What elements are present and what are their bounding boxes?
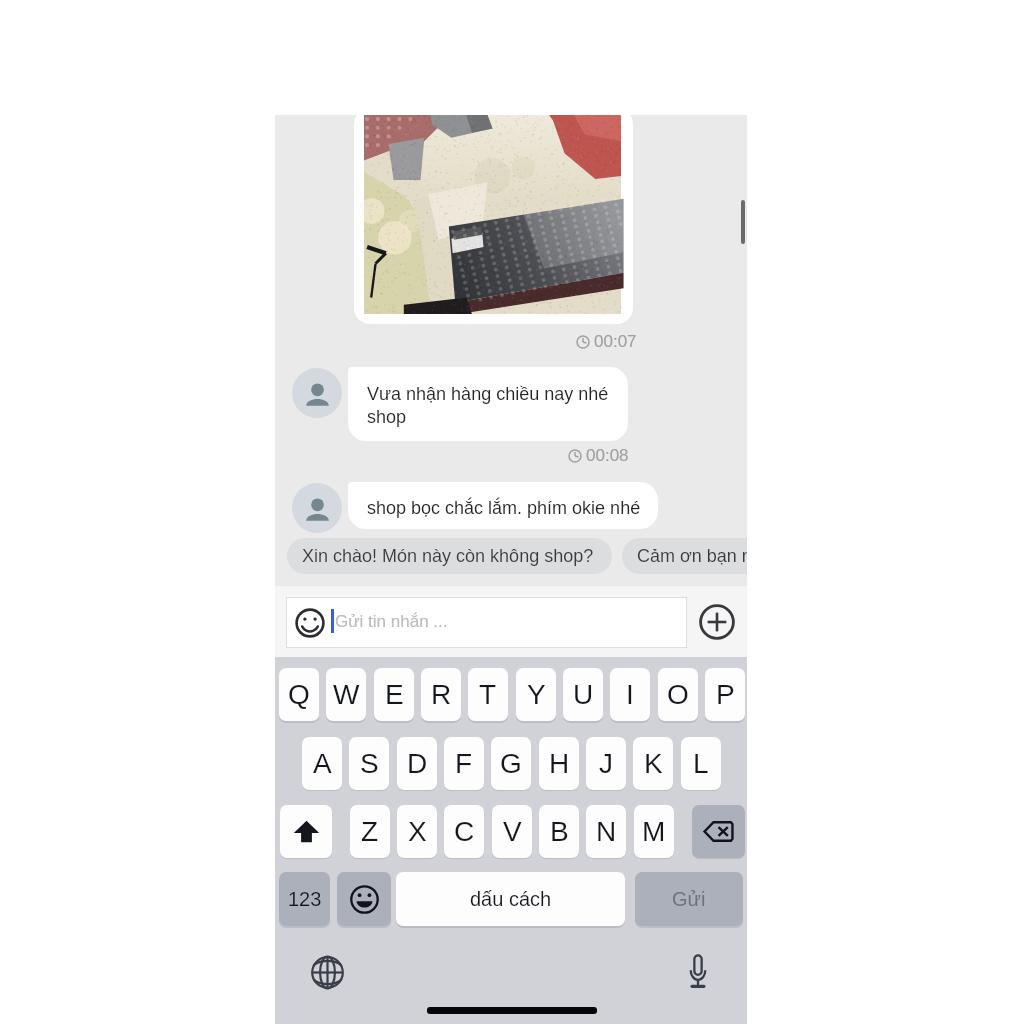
button[interactable]: Emoji: [337, 872, 391, 926]
button[interactable]: W: [326, 668, 366, 721]
staticText: O: [667, 679, 689, 710]
staticText: 123: [288, 888, 322, 910]
button[interactable]: S: [349, 737, 389, 790]
staticText: D: [407, 748, 428, 779]
button[interactable]: P: [705, 668, 745, 721]
staticText: Vưa nhận hàng chiều nay nhé shop: [367, 384, 612, 426]
staticText: Y: [527, 679, 546, 710]
staticText: P: [716, 679, 735, 710]
button[interactable]: Contact avatar: [292, 483, 342, 533]
button[interactable]: X: [397, 805, 437, 858]
button[interactable]: N: [586, 805, 626, 858]
button[interactable]: Change keyboard language: [311, 956, 344, 989]
button[interactable]: Q: [279, 668, 319, 721]
button[interactable]: Add attachment: [699, 604, 735, 640]
staticText: V: [503, 816, 522, 847]
staticText: Q: [288, 679, 310, 710]
button[interactable]: Y: [516, 668, 556, 721]
button[interactable]: Contact avatar: [292, 368, 342, 418]
button[interactable]: [354, 115, 633, 324]
button[interactable]: 123: [279, 872, 330, 926]
button[interactable]: Backspace: [692, 805, 745, 858]
staticText: Gửi: [672, 888, 706, 910]
staticText: E: [385, 679, 404, 710]
staticText: shop bọc chắc lắm. phím okie nhé: [367, 498, 641, 518]
button[interactable]: H: [539, 737, 579, 790]
button[interactable]: V: [492, 805, 532, 858]
button[interactable]: L: [681, 737, 721, 790]
staticText: B: [550, 816, 569, 847]
staticText: R: [431, 679, 452, 710]
staticText: Cảm ơn bạn nhé ạ: [637, 546, 747, 566]
staticText: W: [333, 679, 360, 710]
button[interactable]: K: [633, 737, 673, 790]
staticText: Z: [361, 816, 379, 847]
staticText: U: [573, 679, 594, 710]
staticText: A: [313, 748, 332, 779]
button[interactable]: Z: [350, 805, 390, 858]
staticText: M: [642, 816, 666, 847]
button[interactable]: Shift: [280, 805, 332, 858]
staticText: G: [500, 748, 522, 779]
button[interactable]: G: [491, 737, 531, 790]
staticText: 00:07: [594, 332, 637, 351]
button[interactable]: D: [397, 737, 437, 790]
button[interactable]: dấu cách: [396, 872, 625, 926]
button[interactable]: Gửi tin nhắn ...: [286, 597, 687, 648]
staticText: N: [596, 816, 617, 847]
button[interactable]: J: [586, 737, 626, 790]
button[interactable]: Gửi: [635, 872, 743, 926]
button[interactable]: U: [563, 668, 603, 721]
button[interactable]: O: [658, 668, 698, 721]
staticText: H: [549, 748, 570, 779]
button[interactable]: Voice input: [684, 950, 712, 992]
button[interactable]: M: [634, 805, 674, 858]
button[interactable]: B: [539, 805, 579, 858]
button[interactable]: R: [421, 668, 461, 721]
staticText: C: [454, 816, 475, 847]
staticText: I: [626, 679, 634, 710]
staticText: J: [599, 748, 613, 779]
staticText: dấu cách: [470, 888, 552, 910]
staticText: Xin chào! Món này còn không shop?: [302, 546, 594, 566]
staticText: X: [408, 816, 427, 847]
staticText: L: [693, 748, 709, 779]
button[interactable]: A: [302, 737, 342, 790]
button[interactable]: Vưa nhận hàng chiều nay nhé shop: [348, 367, 628, 441]
button[interactable]: F: [444, 737, 484, 790]
button[interactable]: shop bọc chắc lắm. phím okie nhé: [348, 482, 658, 529]
staticText: T: [479, 679, 497, 710]
staticText: Gửi tin nhắn ...: [335, 612, 448, 631]
button[interactable]: T: [468, 668, 508, 721]
staticText: F: [455, 748, 473, 779]
button[interactable]: Xin chào! Món này còn không shop?: [287, 538, 612, 574]
staticText: K: [644, 748, 663, 779]
staticText: 00:08: [586, 446, 629, 465]
button[interactable]: I: [610, 668, 650, 721]
button[interactable]: Cảm ơn bạn nhé ạ: [622, 538, 747, 574]
button[interactable]: C: [444, 805, 484, 858]
button[interactable]: E: [374, 668, 414, 721]
staticText: S: [360, 748, 379, 779]
